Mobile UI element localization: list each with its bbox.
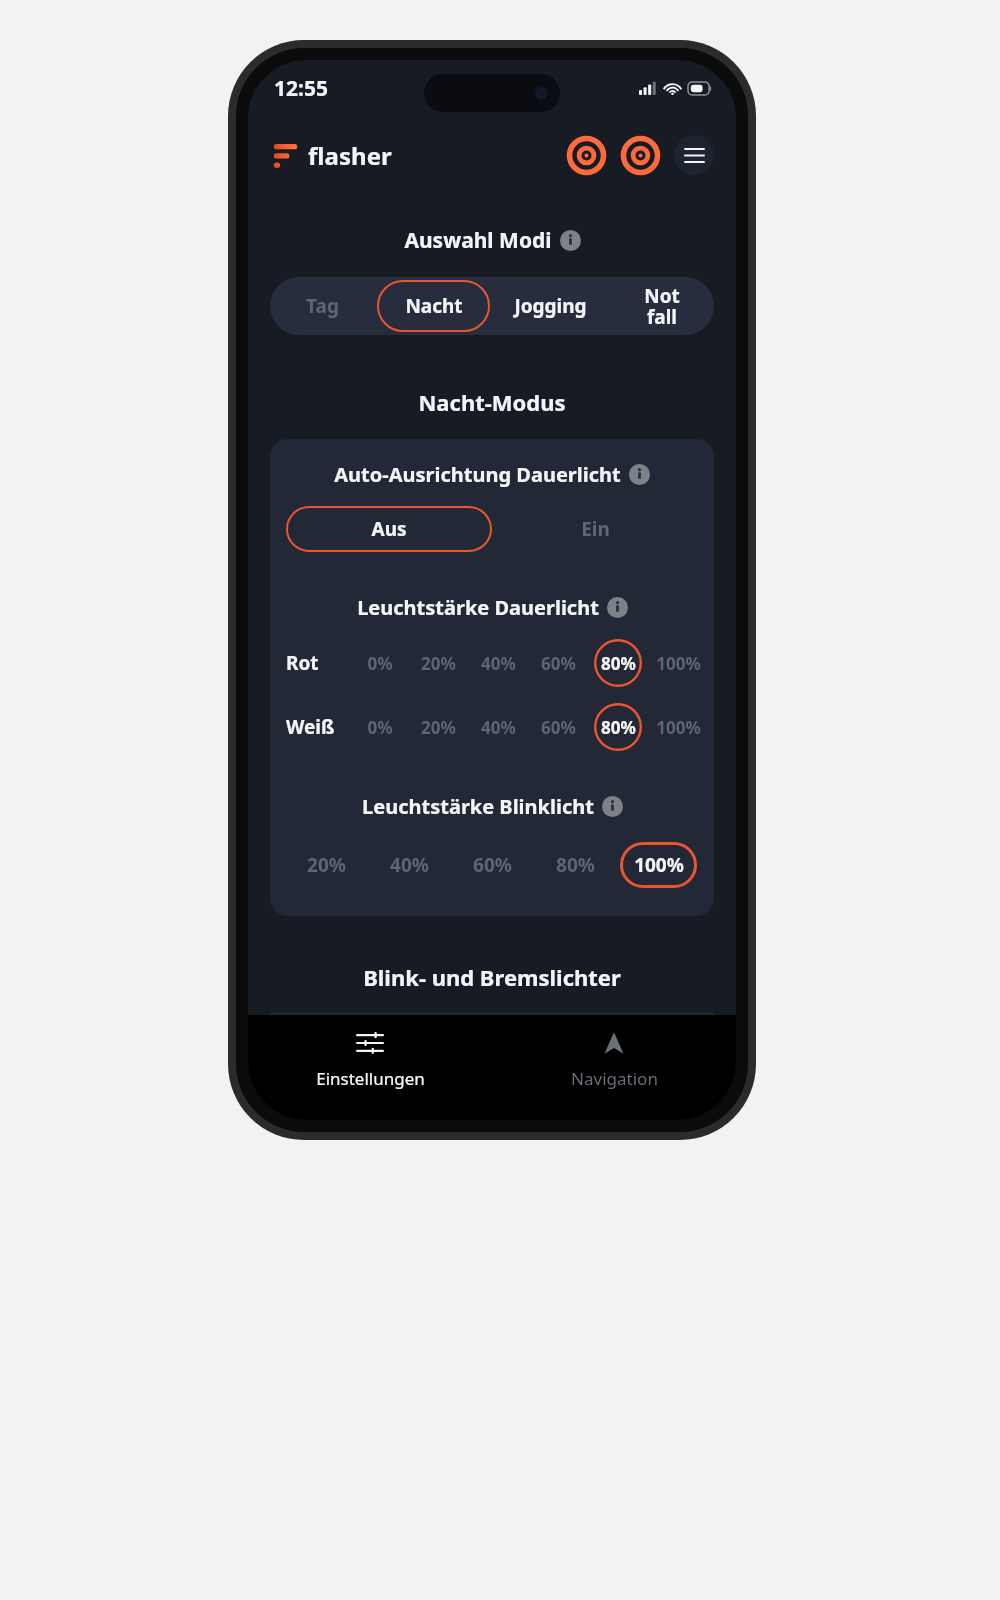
staticText: Aus bbox=[371, 516, 407, 542]
button[interactable]: 80% bbox=[588, 639, 648, 687]
staticText: 100% bbox=[656, 652, 701, 675]
button[interactable]: 60% bbox=[528, 639, 588, 687]
staticText: flasher bbox=[308, 139, 392, 172]
staticText: 60% bbox=[473, 852, 512, 878]
button[interactable]: 0% bbox=[350, 703, 409, 751]
staticText: Weiß bbox=[286, 714, 335, 740]
staticText: 40% bbox=[481, 716, 516, 739]
staticText: Rot bbox=[286, 650, 319, 676]
staticText: 0% bbox=[367, 652, 393, 675]
button[interactable]: Tag bbox=[272, 277, 373, 335]
staticText: 40% bbox=[481, 652, 516, 675]
staticText: Ein bbox=[581, 516, 610, 542]
button[interactable]: Info bbox=[560, 230, 581, 251]
button[interactable]: 60% bbox=[454, 840, 531, 890]
button[interactable]: Ein bbox=[492, 506, 698, 552]
button[interactable]: Info bbox=[607, 597, 628, 618]
staticText: 12:55 bbox=[274, 74, 328, 103]
staticText: Auswahl Modi bbox=[404, 226, 552, 255]
button[interactable]: Rear light bbox=[620, 135, 660, 175]
button[interactable]: 100% bbox=[648, 639, 708, 687]
button[interactable]: 80% bbox=[537, 840, 614, 890]
button[interactable]: 100% bbox=[648, 703, 708, 751]
staticText: Blink- und Bremslichter bbox=[363, 962, 621, 992]
staticText: 100% bbox=[656, 716, 701, 739]
button[interactable]: 40% bbox=[468, 703, 528, 751]
staticText: 100% bbox=[634, 852, 684, 878]
button[interactable]: 20% bbox=[287, 840, 365, 890]
button[interactable]: Info bbox=[629, 464, 650, 485]
button[interactable]: Einstellungen bbox=[248, 1015, 492, 1120]
staticText: 40% bbox=[390, 852, 429, 878]
button[interactable]: flasher bbox=[272, 139, 392, 172]
staticText: Jogging bbox=[514, 293, 587, 319]
button[interactable]: 40% bbox=[468, 639, 528, 687]
staticText: 60% bbox=[541, 716, 576, 739]
staticText: Leuchtstärke Blinklicht bbox=[362, 793, 594, 820]
staticText: 20% bbox=[421, 652, 456, 675]
staticText: Leuchtstärke Dauerlicht bbox=[357, 594, 599, 621]
button[interactable]: 40% bbox=[371, 840, 448, 890]
staticText: Not fall bbox=[644, 283, 680, 330]
staticText: Navigation bbox=[571, 1067, 658, 1090]
staticText: Einstellungen bbox=[316, 1067, 425, 1090]
button[interactable]: Navigation bbox=[492, 1015, 736, 1120]
button[interactable]: 80% bbox=[588, 703, 648, 751]
button[interactable]: Nacht bbox=[377, 277, 490, 335]
staticText: Auto-Ausrichtung Dauerlicht bbox=[334, 461, 621, 488]
staticText: 20% bbox=[307, 852, 346, 878]
staticText: Nacht bbox=[405, 293, 463, 319]
button[interactable]: 60% bbox=[528, 703, 588, 751]
button[interactable]: Front light bbox=[566, 135, 606, 175]
staticText: 80% bbox=[556, 852, 595, 878]
button[interactable]: Info bbox=[602, 796, 623, 817]
button[interactable]: Aus bbox=[286, 506, 492, 552]
button[interactable]: 100% bbox=[620, 840, 697, 890]
staticText: 0% bbox=[367, 716, 393, 739]
staticText: Nacht-Modus bbox=[418, 387, 566, 417]
button[interactable]: 20% bbox=[409, 639, 468, 687]
staticText: 80% bbox=[601, 716, 636, 739]
button[interactable]: 0% bbox=[350, 639, 409, 687]
staticText: Tag bbox=[306, 293, 339, 319]
button[interactable]: Menu bbox=[674, 135, 714, 175]
button[interactable]: 20% bbox=[409, 703, 468, 751]
staticText: 80% bbox=[601, 652, 636, 675]
button[interactable]: Not fall bbox=[611, 277, 712, 335]
staticText: 60% bbox=[541, 652, 576, 675]
button[interactable]: Jogging bbox=[494, 277, 607, 335]
staticText: 20% bbox=[421, 716, 456, 739]
